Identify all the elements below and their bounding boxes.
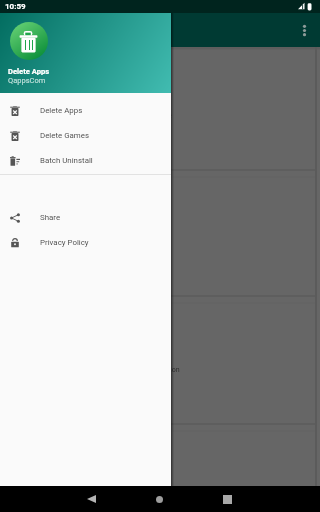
button[interactable]: Share (0, 205, 171, 230)
staticText: e (168, 112, 172, 120)
staticText: Delete Games (40, 131, 90, 140)
staticText: Share (40, 213, 61, 222)
button[interactable]: Delete Apps (0, 98, 171, 123)
button[interactable]: Delete Games (0, 123, 171, 148)
button[interactable]: Home (142, 486, 177, 512)
staticText: Delete Apps (40, 106, 83, 115)
button[interactable]: Privacy Policy (0, 230, 171, 255)
button[interactable]: Batch Uninstall (0, 148, 171, 173)
button[interactable]: More options (291, 17, 317, 43)
button[interactable]: Recents (210, 486, 245, 512)
staticText: 10:59 (5, 2, 26, 11)
button[interactable]: Back (74, 486, 109, 512)
staticText: QappsCom (8, 76, 46, 85)
staticText: Delete Apps (8, 67, 50, 76)
staticText: Batch Uninstall (40, 156, 93, 165)
staticText: Privacy Policy (40, 238, 89, 247)
staticText: ction (164, 366, 180, 374)
